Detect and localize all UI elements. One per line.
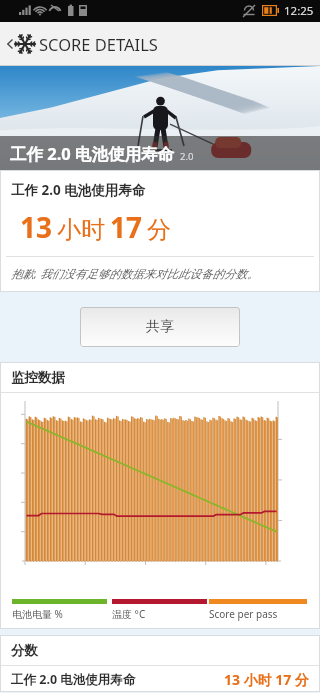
other: Back xyxy=(3,37,17,51)
staticText: 分 xyxy=(147,215,171,245)
staticText: 工作 2.0 电池使用寿命 xyxy=(11,181,146,199)
staticText: 电池电量 % xyxy=(12,607,63,621)
staticText: 工作 2.0 电池使用寿命 xyxy=(10,142,175,165)
staticText: 12:25 xyxy=(284,3,314,19)
staticText: 监控数据 xyxy=(11,369,65,386)
staticText: 13 xyxy=(20,208,53,246)
staticText: 小时 xyxy=(57,215,105,245)
staticText: 分数 xyxy=(11,642,38,659)
button[interactable]: 共享 xyxy=(80,307,240,347)
staticText: Score per pass xyxy=(209,607,278,621)
staticText: SCORE DETAILS xyxy=(39,33,158,55)
staticText: 共享 xyxy=(146,318,174,336)
staticText: 17 xyxy=(110,208,143,246)
staticText: 抱歉, 我们没有足够的数据来对比此设备的分数。 xyxy=(11,266,259,282)
button[interactable]: 工作 2.0 电池使用寿命 xyxy=(0,666,320,692)
staticText: 2.0 xyxy=(180,150,194,163)
staticText: 温度 °C xyxy=(112,607,146,621)
staticText: 13 小时 17 分 xyxy=(224,670,309,689)
button[interactable]: Back xyxy=(0,22,320,66)
staticText: 工作 2.0 电池使用寿命 xyxy=(11,671,136,688)
